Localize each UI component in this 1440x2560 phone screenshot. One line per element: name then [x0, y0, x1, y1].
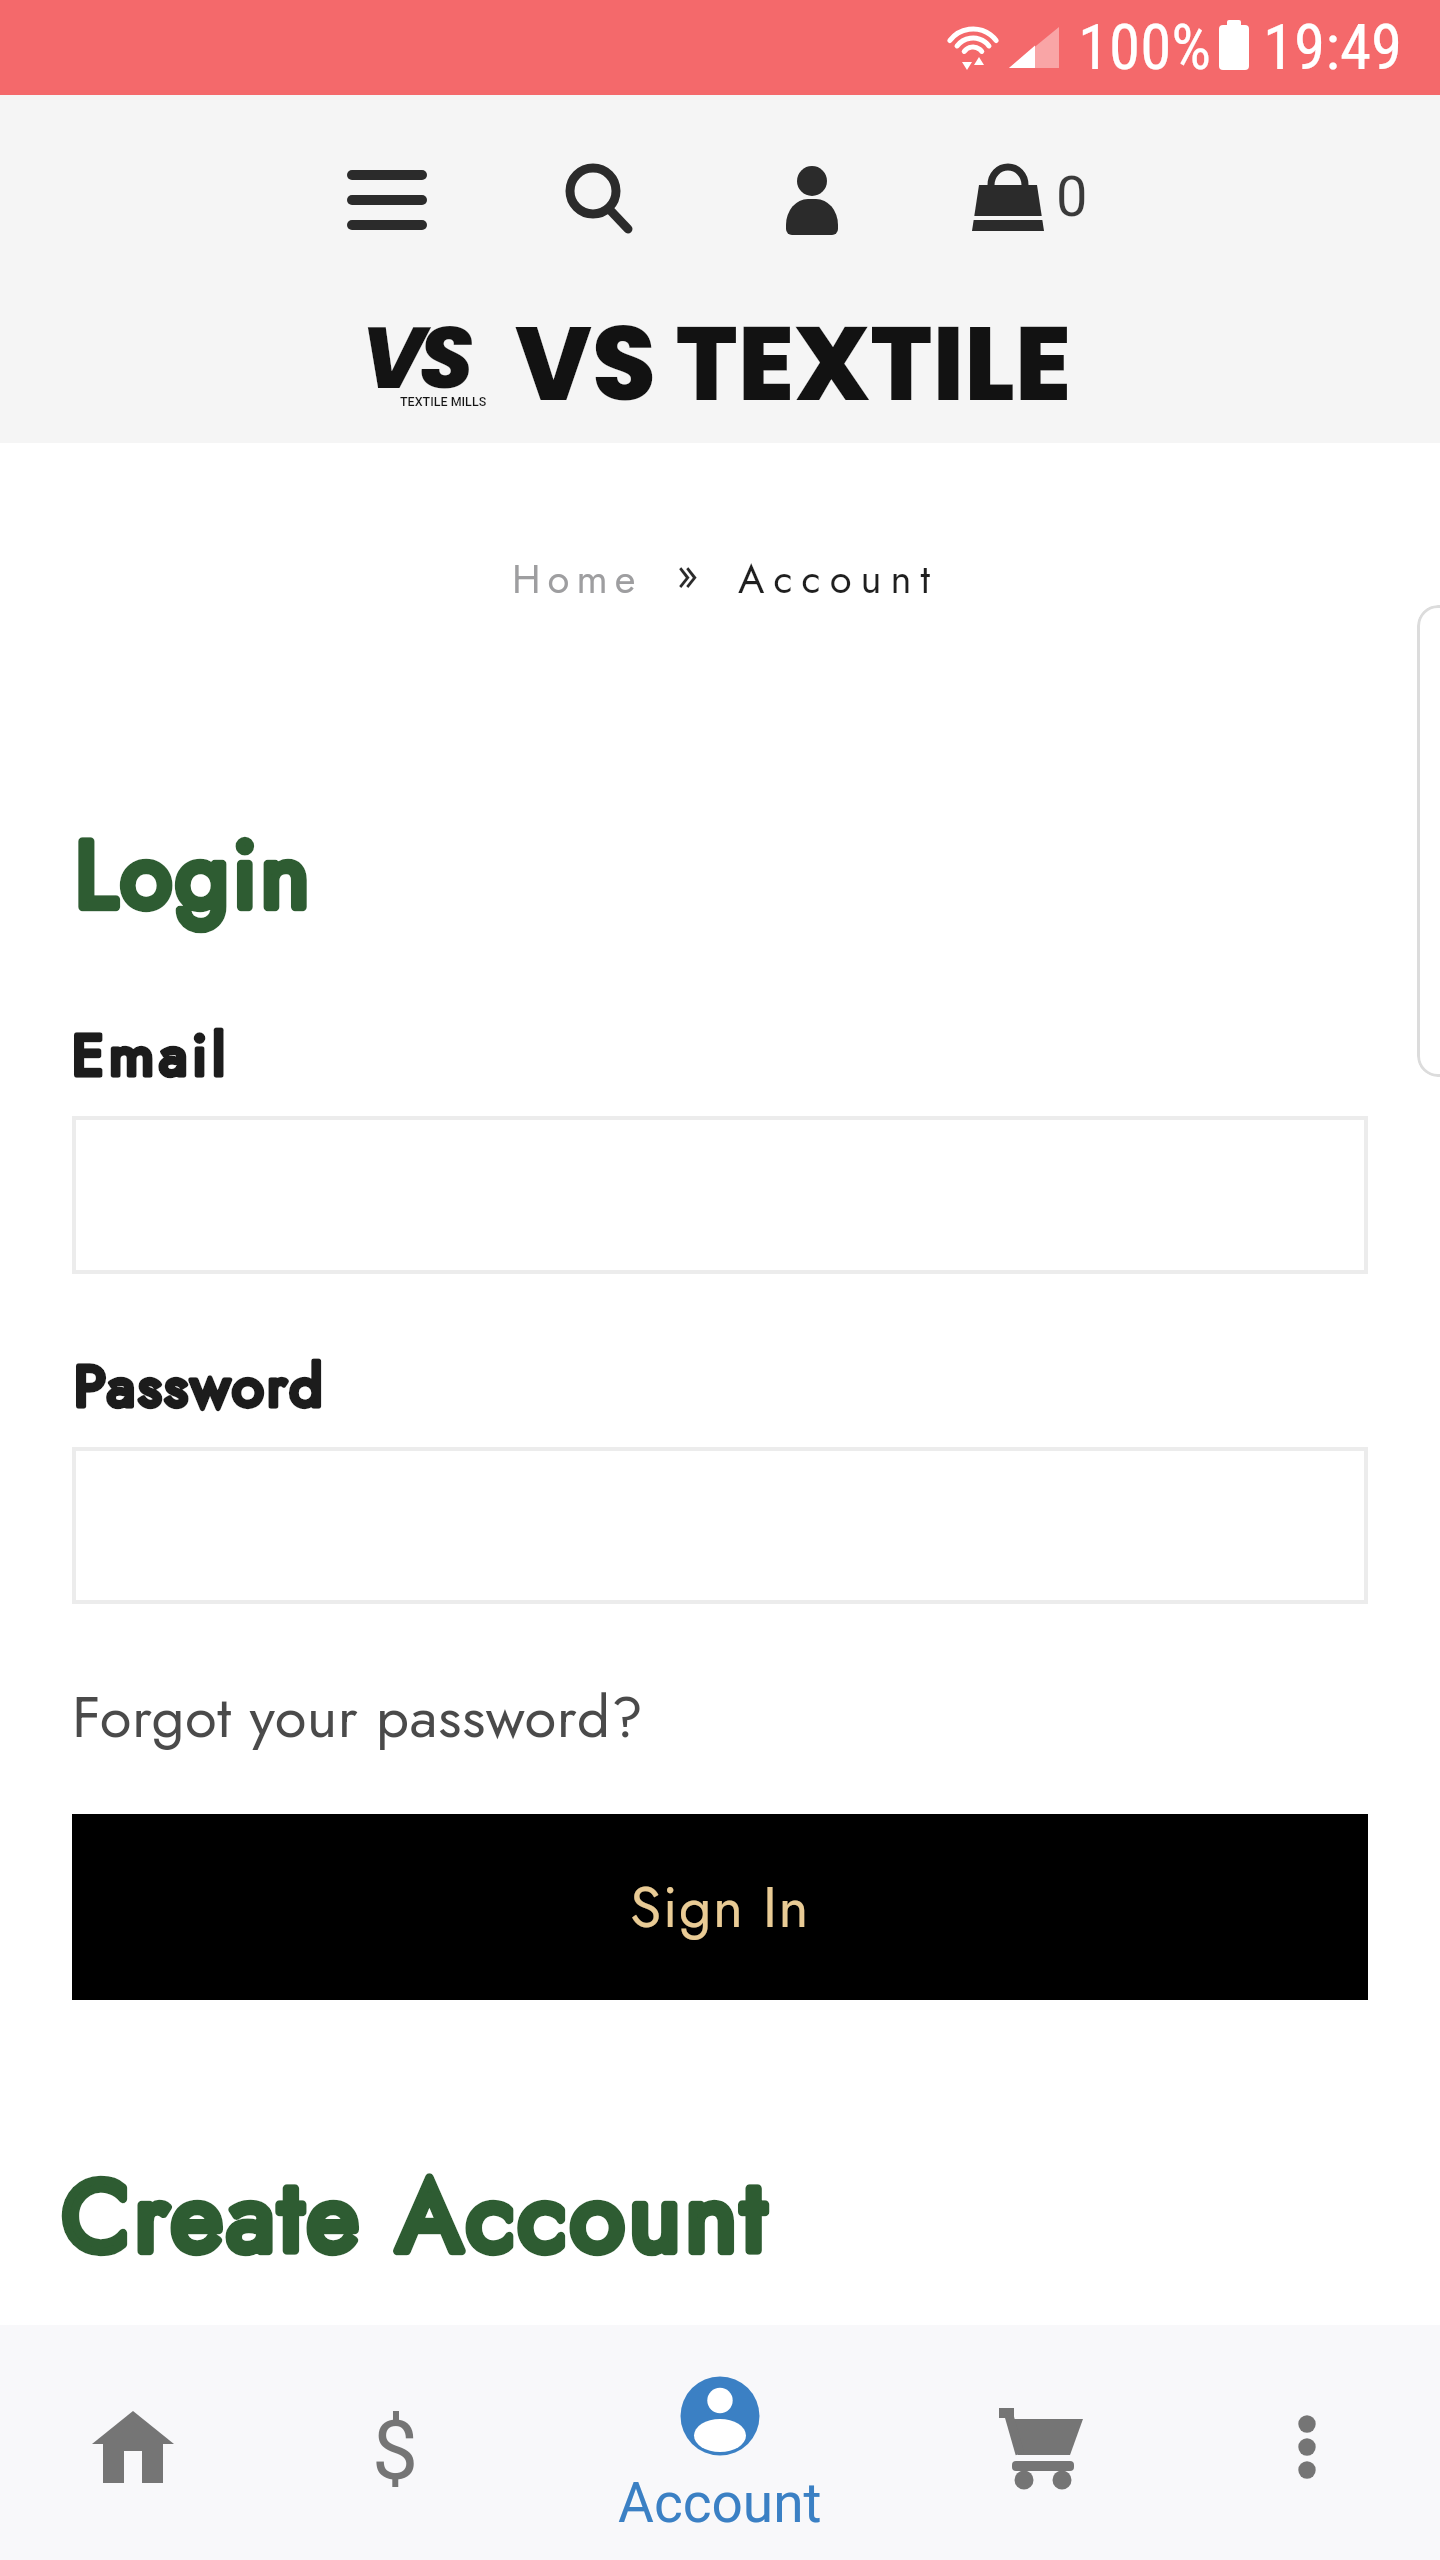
staticText: Account [618, 2471, 822, 2535]
staticText: » [676, 542, 699, 606]
staticText: $ [372, 2403, 419, 2499]
button[interactable] [973, 2376, 1113, 2516]
button[interactable] [72, 1116, 1368, 1274]
staticText: VS TEXTILE [515, 292, 1072, 436]
button[interactable]: $ [325, 2381, 465, 2521]
staticText: 0 [1056, 164, 1088, 230]
staticText: TEXTILE MILLS [400, 394, 487, 409]
button[interactable] [752, 140, 872, 260]
button[interactable]: Account [738, 550, 940, 608]
button[interactable]: Home [512, 550, 643, 608]
button[interactable] [540, 140, 660, 260]
button[interactable] [72, 1447, 1368, 1604]
button[interactable]: Forgot your password? [72, 1675, 644, 1759]
staticText: Create Account [62, 2145, 771, 2288]
staticText: Login [75, 807, 314, 941]
staticText: Login [75, 807, 314, 941]
staticText: Password [74, 1344, 326, 1428]
staticText: Password [74, 1344, 326, 1428]
button[interactable] [63, 2377, 203, 2517]
button[interactable] [1237, 2377, 1377, 2517]
button[interactable]: Account [610, 2355, 830, 2555]
staticText: 100% [1078, 11, 1212, 85]
staticText: Sign In [630, 1866, 810, 1948]
button[interactable]: 0 [944, 135, 1104, 255]
staticText: 19:49 [1263, 11, 1403, 85]
staticText: VS [361, 298, 468, 418]
button[interactable] [327, 140, 447, 260]
button[interactable]: Sign In [72, 1814, 1368, 2000]
staticText: Email [72, 1013, 231, 1097]
staticText: Create Account [62, 2145, 771, 2288]
button[interactable]: VS [355, 275, 1085, 425]
staticText: Email [72, 1013, 231, 1097]
